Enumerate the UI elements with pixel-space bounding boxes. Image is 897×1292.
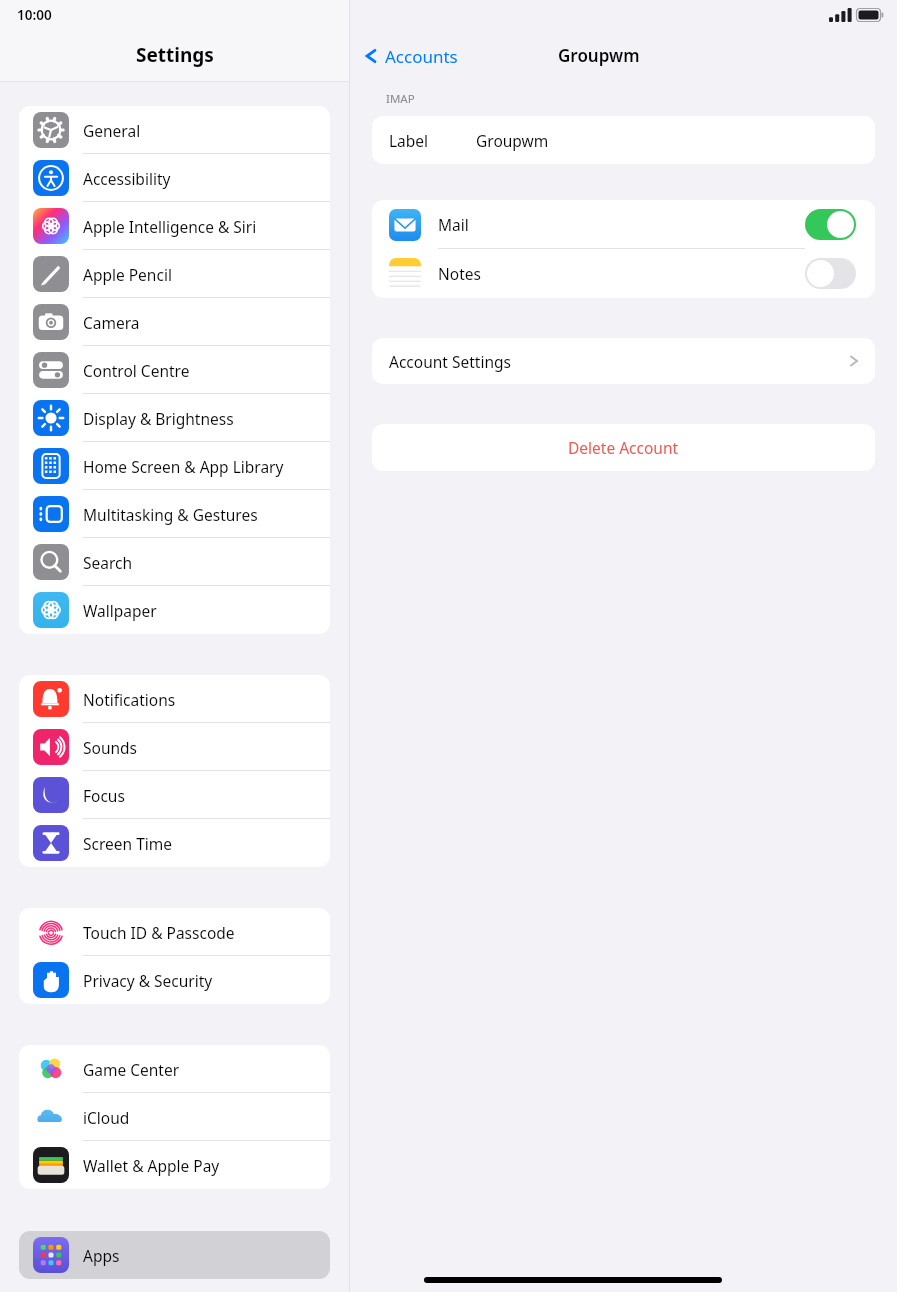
button[interactable]: Notes off [805, 258, 856, 289]
staticText: Search [83, 552, 133, 573]
staticText: Display & Brightness [83, 408, 234, 429]
staticText: Mail [438, 214, 469, 235]
button[interactable]: Mail on [805, 209, 856, 240]
button[interactable]: Wallpaper [19, 586, 330, 634]
button[interactable]: Control Centre [19, 346, 330, 394]
staticText: Apple Intelligence & Siri [83, 216, 257, 237]
button[interactable]: Apple Pencil [19, 250, 330, 298]
button[interactable]: Privacy & Security [19, 956, 330, 1004]
staticText: Screen Time [83, 833, 172, 854]
staticText: Label [389, 130, 429, 151]
staticText: Control Centre [83, 360, 190, 381]
button[interactable]: Touch ID & Passcode [19, 908, 330, 956]
staticText: Accessibility [83, 168, 171, 189]
staticText: Settings [136, 42, 214, 68]
button[interactable]: Camera [19, 298, 330, 346]
button[interactable]: Account Settings [372, 338, 875, 384]
staticText: General [83, 120, 141, 141]
staticText: Wallet & Apple Pay [83, 1155, 220, 1176]
staticText: Apple Pencil [83, 264, 172, 285]
staticText: iCloud [83, 1107, 130, 1128]
button[interactable]: Notes [372, 249, 875, 298]
staticText: Apps [83, 1245, 120, 1266]
staticText: 10:00 [17, 6, 52, 24]
button[interactable]: iCloud [19, 1093, 330, 1141]
button[interactable]: Label [372, 116, 875, 164]
staticText: Notes [438, 263, 481, 284]
button[interactable]: Display & Brightness [19, 394, 330, 442]
button[interactable]: Sounds [19, 723, 330, 771]
staticText: Privacy & Security [83, 970, 213, 991]
button[interactable]: General [19, 106, 330, 154]
staticText: Multitasking & Gestures [83, 504, 258, 525]
staticText: IMAP [386, 91, 415, 107]
button[interactable]: Accounts [362, 36, 458, 76]
staticText: Game Center [83, 1059, 180, 1080]
button[interactable]: Multitasking & Gestures [19, 490, 330, 538]
button[interactable]: Accessibility [19, 154, 330, 202]
staticText: Sounds [83, 737, 138, 758]
button[interactable]: Delete Account [372, 424, 875, 471]
button[interactable]: Mail [372, 200, 875, 249]
staticText: Account Settings [389, 351, 511, 372]
staticText: Delete Account [568, 437, 679, 458]
button[interactable]: Notifications [19, 675, 330, 723]
button[interactable]: Game Center [19, 1045, 330, 1093]
button[interactable]: Apple Intelligence & Siri [19, 202, 330, 250]
button[interactable]: Screen Time [19, 819, 330, 867]
button[interactable]: Focus [19, 771, 330, 819]
button[interactable]: Search [19, 538, 330, 586]
button[interactable]: Home Screen & App Library [19, 442, 330, 490]
staticText: Focus [83, 785, 125, 806]
staticText: Groupwm [476, 130, 549, 151]
button[interactable]: Wallet & Apple Pay [19, 1141, 330, 1189]
staticText: Camera [83, 312, 140, 333]
staticText: Groupwm [558, 44, 640, 67]
staticText: Accounts [385, 45, 458, 68]
button[interactable]: Apps [19, 1231, 330, 1279]
staticText: Touch ID & Passcode [83, 922, 235, 943]
staticText: Home Screen & App Library [83, 456, 284, 477]
staticText: Wallpaper [83, 600, 157, 621]
staticText: Notifications [83, 689, 176, 710]
